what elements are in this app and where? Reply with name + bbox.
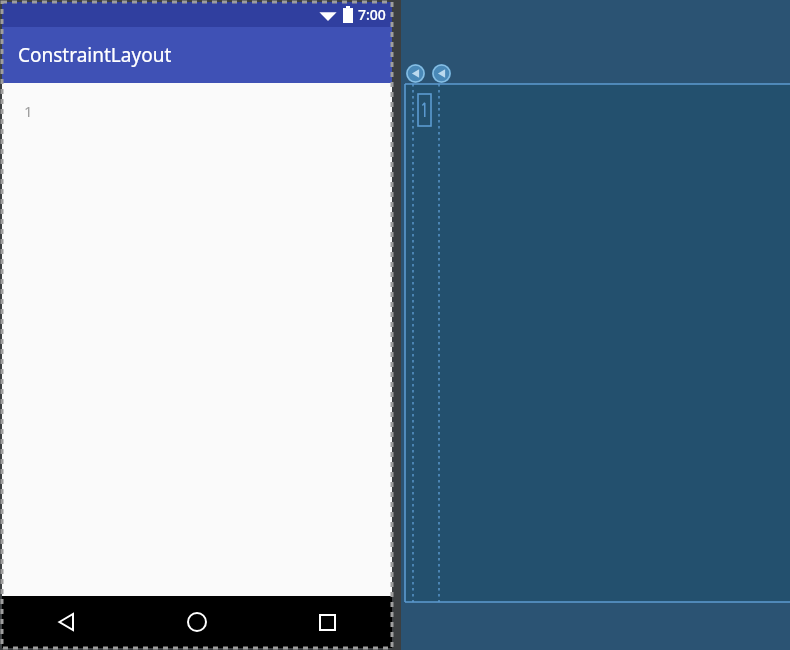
other: Battery [343,6,353,23]
button[interactable]: Back [2,596,132,648]
staticText: ConstraintLayout [18,42,172,68]
button[interactable]: ConstraintLayout [2,27,392,83]
button[interactable]: Constraint handle [406,64,425,83]
other: Wi-Fi [319,8,337,22]
button[interactable]: Home [132,596,262,648]
button[interactable]: Recents [262,596,392,648]
button[interactable]: 1 [24,101,33,121]
staticText: 7:00 [358,5,386,24]
button[interactable]: Constraint handle [432,64,451,83]
